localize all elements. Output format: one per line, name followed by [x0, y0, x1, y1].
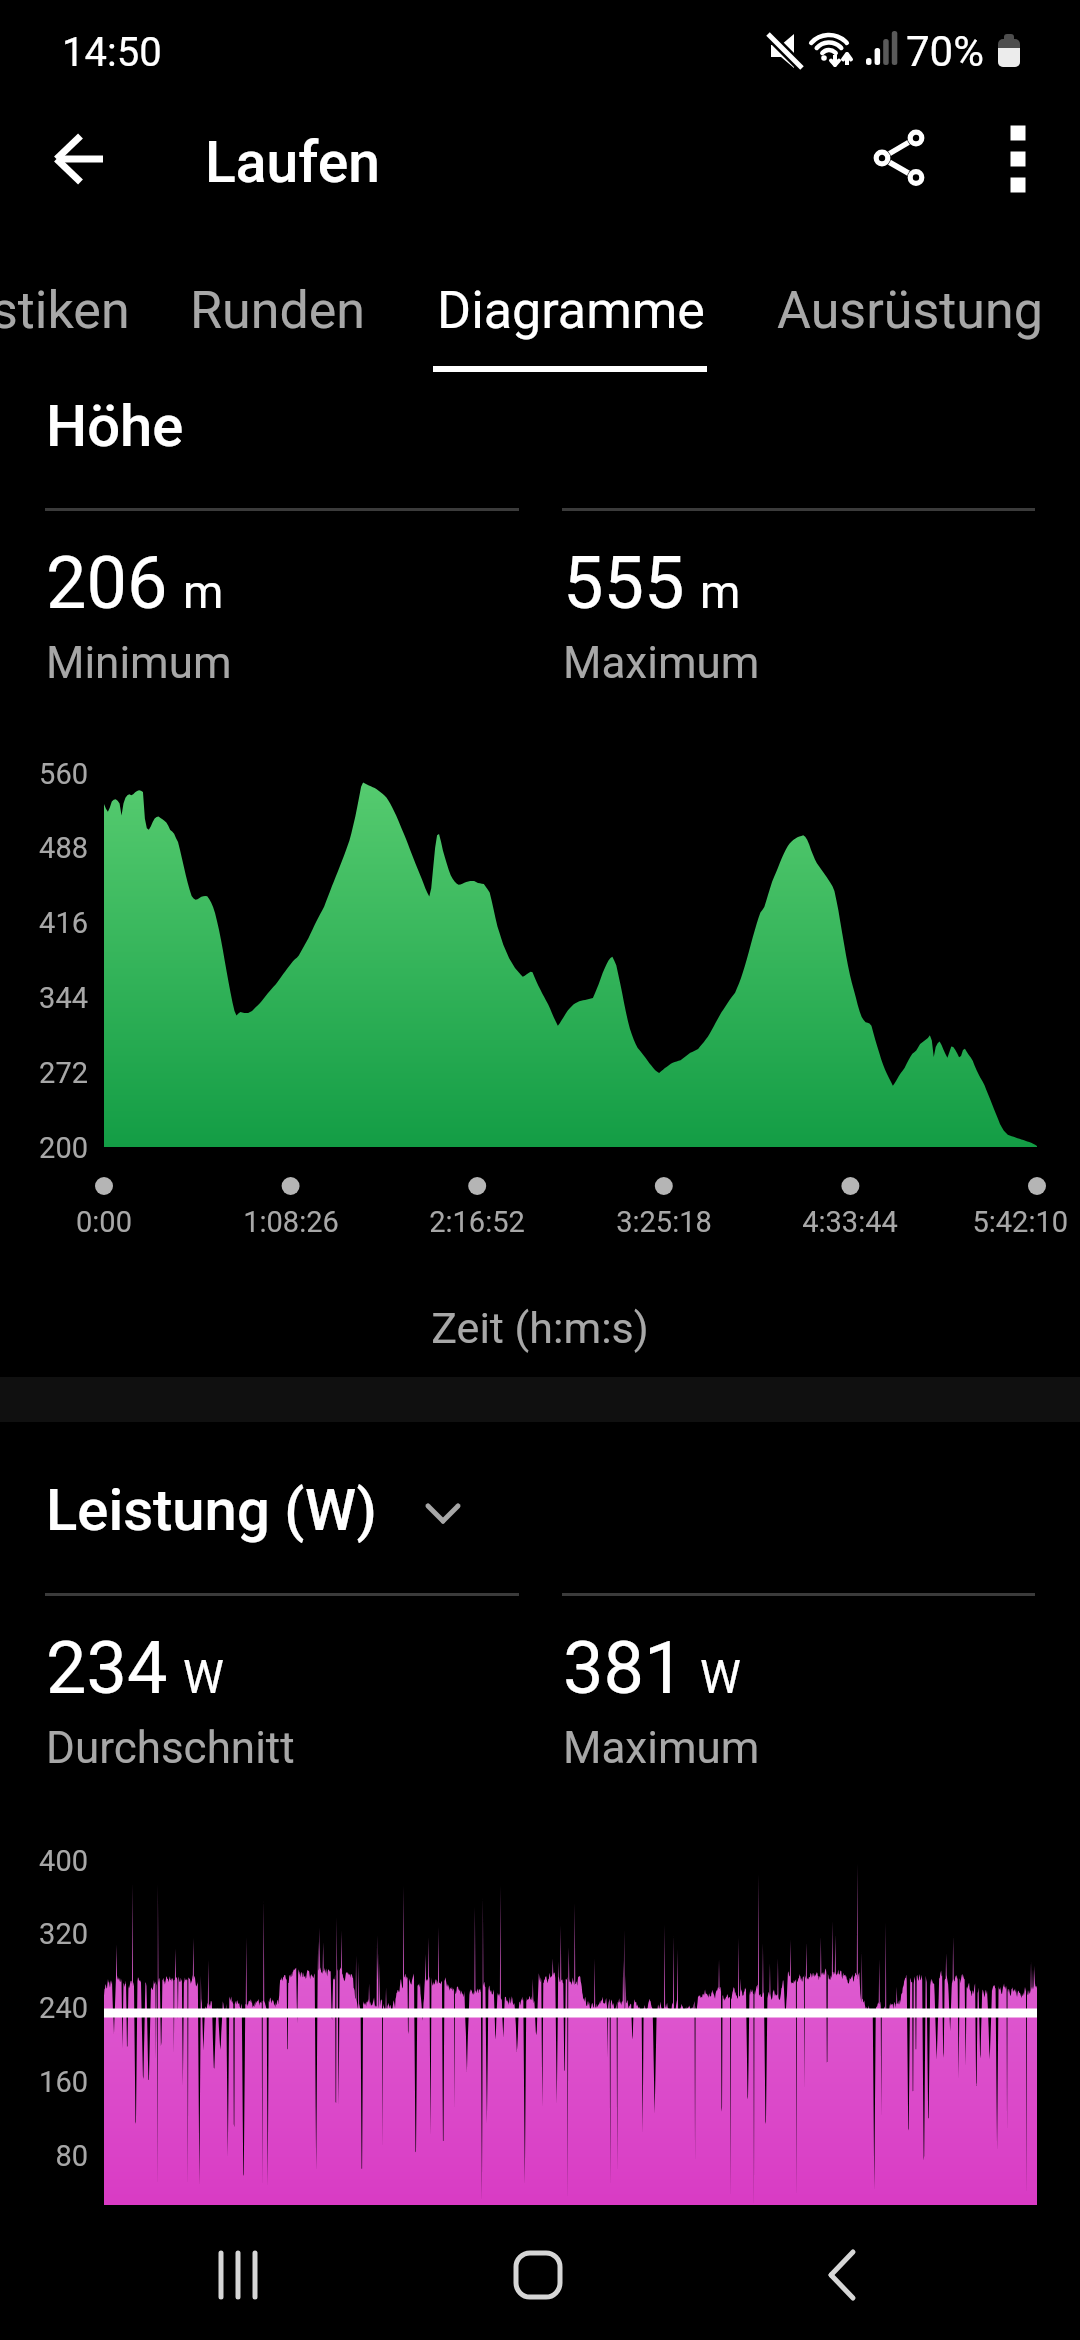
staticText: 4:33:44 — [700, 1205, 1000, 1239]
button[interactable]: Runden — [190, 248, 410, 376]
button[interactable]: Ausrüstung — [777, 248, 1080, 376]
staticText: 400 — [0, 1844, 88, 1878]
staticText: W — [700, 1650, 741, 1704]
staticText: Leistung (W) — [46, 1476, 377, 1544]
staticText: 206 — [46, 541, 168, 625]
staticText: Zeit (h:m:s) — [0, 1303, 1080, 1353]
staticText: 320 — [0, 1917, 88, 1951]
button[interactable]: Home — [478, 2215, 598, 2335]
staticText: Ausrüstung — [777, 280, 1043, 341]
staticText: 560 — [0, 757, 88, 791]
staticText: m — [700, 565, 741, 619]
staticText: 0:00 — [0, 1205, 254, 1239]
staticText: 555 — [563, 541, 685, 625]
button[interactable]: Share — [841, 100, 957, 216]
staticText: Diagramme — [437, 280, 705, 341]
staticText: Durchschnitt — [46, 1722, 295, 1774]
staticText: 70% — [906, 27, 984, 76]
staticText: Runden — [190, 280, 366, 341]
staticText: Maximum — [563, 1722, 760, 1774]
staticText: 5:42:10 — [768, 1205, 1068, 1239]
staticText: 381 — [563, 1626, 685, 1710]
staticText: 488 — [0, 831, 88, 865]
button[interactable]: Recents — [178, 2215, 298, 2335]
staticText: Maximum — [563, 637, 760, 689]
staticText: Minimum — [46, 637, 232, 689]
staticText: Höhe — [46, 392, 184, 460]
staticText: 160 — [0, 2065, 88, 2099]
staticText: 14:50 — [62, 29, 162, 76]
button[interactable]: Diagramme — [437, 248, 717, 376]
staticText: 416 — [0, 906, 88, 940]
staticText: 344 — [0, 981, 88, 1015]
button[interactable]: More options — [960, 100, 1076, 216]
staticText: 234 — [46, 1626, 168, 1710]
button[interactable]: Back — [22, 100, 138, 216]
staticText: 1:08:26 — [141, 1205, 441, 1239]
button[interactable]: Back — [780, 2215, 900, 2335]
button[interactable]: stiken — [0, 248, 191, 376]
staticText: m — [183, 565, 224, 619]
staticText: 272 — [0, 1056, 88, 1090]
staticText: Laufen — [205, 129, 380, 196]
staticText: stiken — [0, 280, 130, 341]
staticText: 2:16:52 — [327, 1205, 627, 1239]
button[interactable]: Leistung (W) — [30, 1466, 500, 1558]
staticText: W — [183, 1650, 224, 1704]
staticText: 3:25:18 — [514, 1205, 814, 1239]
staticText: 240 — [0, 1991, 88, 2025]
staticText: 200 — [0, 1131, 88, 1165]
staticText: 80 — [0, 2139, 88, 2173]
